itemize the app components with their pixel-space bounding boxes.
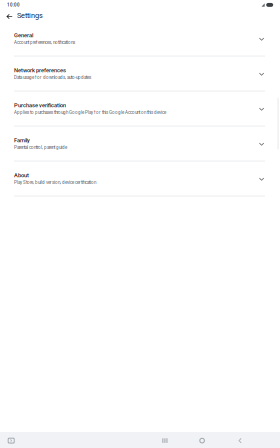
button[interactable]: About [0, 161, 280, 196]
staticText: About [14, 172, 29, 179]
button[interactable]: General [0, 21, 280, 56]
button[interactable]: Family [0, 126, 280, 161]
staticText: Applies to purchases through Google Play… [14, 110, 166, 115]
staticText: Account preferences, notifications [14, 40, 75, 45]
staticText: Settings [17, 11, 43, 20]
button[interactable]: Back [228, 433, 252, 448]
button[interactable]: Recent apps [153, 433, 177, 448]
staticText: Parental control, parent guide [14, 145, 67, 150]
staticText: Network preferences [14, 67, 66, 74]
staticText: 10:00 [7, 2, 20, 7]
button[interactable]: Home [190, 433, 214, 448]
staticText: Data usage for downloads, auto-updates [14, 75, 91, 80]
button[interactable]: Back [3, 10, 15, 22]
button[interactable]: Purchase verification [0, 91, 280, 126]
staticText: Purchase verification [14, 102, 66, 109]
button[interactable]: Switch keyboard [3, 433, 19, 448]
button[interactable]: Network preferences [0, 56, 280, 91]
staticText: Family [14, 137, 30, 144]
staticText: General [14, 32, 33, 39]
staticText: Play Store, build version, device certif… [14, 180, 96, 185]
